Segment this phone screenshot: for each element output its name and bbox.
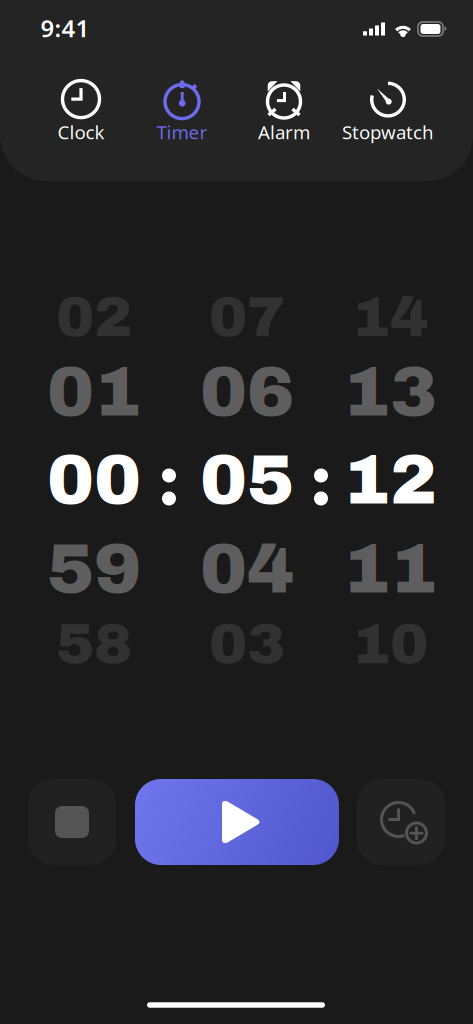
button[interactable]: Timer (146, 76, 217, 148)
staticText: 04 (200, 531, 294, 607)
staticText: Timer (156, 120, 207, 144)
staticText: 01 (47, 354, 141, 430)
staticText: 10 (352, 613, 428, 675)
staticText: 13 (343, 354, 437, 430)
staticText: 06 (200, 354, 294, 430)
staticText: 14 (352, 286, 428, 348)
staticText: 03 (209, 613, 285, 675)
staticText: 05 (200, 442, 294, 518)
button[interactable]: Start (135, 779, 339, 865)
button[interactable]: Stop (28, 779, 116, 865)
button[interactable]: Clock (47, 76, 114, 148)
staticText: Alarm (258, 120, 310, 144)
staticText: 59 (47, 531, 141, 607)
staticText: 00 (47, 442, 141, 518)
staticText: 07 (209, 286, 285, 348)
button[interactable]: Add timer (357, 779, 445, 865)
button[interactable]: Stopwatch (332, 76, 444, 148)
staticText: 02 (56, 286, 132, 348)
staticText: Clock (57, 120, 104, 144)
staticText: 12 (343, 442, 437, 518)
staticText: Stopwatch (342, 120, 434, 144)
button[interactable]: Alarm (248, 76, 320, 148)
staticText: 11 (343, 531, 437, 607)
staticText: 58 (56, 613, 132, 675)
staticText: 9:41 (40, 12, 89, 44)
